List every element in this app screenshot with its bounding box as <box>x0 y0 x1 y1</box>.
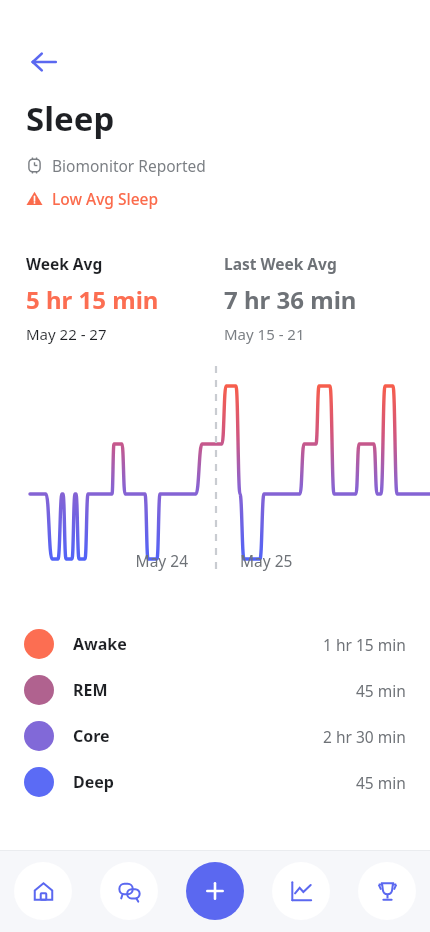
staticText: Biomonitor Reported <box>52 155 206 176</box>
staticText: 7 hr 36 min <box>224 283 357 316</box>
button[interactable]: Deep <box>0 759 430 805</box>
staticText: Deep <box>73 771 114 793</box>
button[interactable]: Awake <box>0 621 430 667</box>
staticText: 5 hr 15 min <box>26 283 159 316</box>
staticText: Core <box>73 725 110 747</box>
button[interactable]: Core <box>0 713 430 759</box>
staticText: May 15 - 21 <box>224 324 305 344</box>
staticText: 1 hr 15 min <box>323 634 406 655</box>
staticText: Week Avg <box>26 253 103 274</box>
staticText: May 25 <box>240 550 336 571</box>
button[interactable]: REM <box>0 667 430 713</box>
staticText: Low Avg Sleep <box>52 188 159 209</box>
staticText: 45 min <box>356 772 406 793</box>
button[interactable]: Messages <box>100 862 158 920</box>
staticText: Awake <box>73 633 127 655</box>
staticText: Last Week Avg <box>224 253 337 274</box>
staticText: Sleep <box>26 96 115 141</box>
button[interactable]: Add <box>186 862 244 920</box>
button[interactable]: Awards <box>358 862 416 920</box>
button[interactable]: Activity <box>272 862 330 920</box>
button[interactable]: Back <box>16 34 72 90</box>
staticText: 2 hr 30 min <box>323 726 406 747</box>
staticText: May 22 - 27 <box>26 324 107 344</box>
staticText: 45 min <box>356 680 406 701</box>
staticText: REM <box>73 679 108 701</box>
staticText: May 24 <box>0 550 188 571</box>
button[interactable]: Home <box>14 862 72 920</box>
